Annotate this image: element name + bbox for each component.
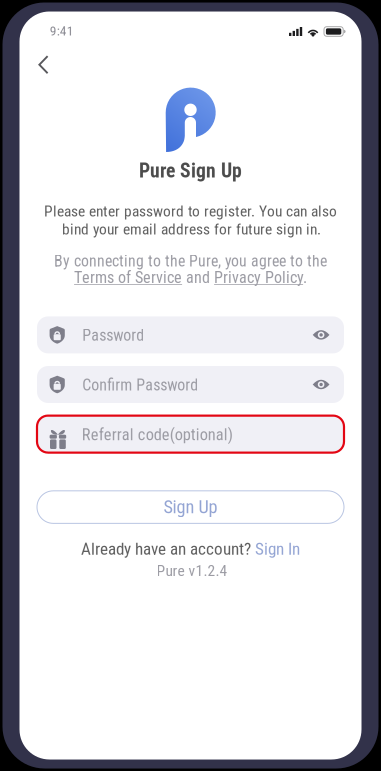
staticText: Sign In (255, 539, 300, 559)
staticText: Terms of Service and Privacy Policy. (74, 268, 307, 287)
staticText: Confirm Password (82, 376, 198, 394)
staticText: By connecting to the Pure, you agree to … (54, 252, 327, 270)
button[interactable]: Referral code(optional) (37, 416, 344, 453)
staticText: Pure Sign Up (139, 159, 242, 182)
staticText: Password (82, 326, 144, 345)
staticText: 9:41 (50, 23, 74, 39)
staticText: Pure v1.2.4 (156, 561, 227, 580)
button[interactable]: Confirm Password (37, 366, 344, 403)
staticText: Referral code(optional) (82, 425, 233, 444)
staticText: Already have an account? (81, 539, 255, 559)
button[interactable]: Back (27, 46, 60, 83)
staticText: bind your email address for future sign … (62, 220, 321, 238)
staticText: Please enter password to register. You c… (44, 202, 337, 220)
button[interactable]: Password (37, 316, 344, 353)
button[interactable]: Sign Up (37, 491, 344, 523)
button[interactable]: Sign In (255, 539, 300, 559)
staticText: Sign Up (163, 496, 217, 518)
